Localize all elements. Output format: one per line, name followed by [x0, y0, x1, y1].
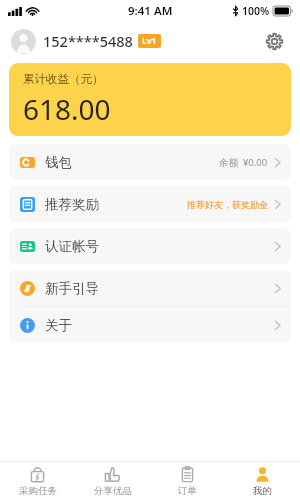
button[interactable]: 分享优品	[75, 462, 150, 500]
button[interactable]: 认证帐号	[9, 228, 291, 264]
staticText: 分享优品	[94, 485, 132, 497]
button[interactable]: 新手引导	[9, 270, 291, 306]
staticText: 余额 ¥0.00	[219, 156, 268, 169]
staticText: Lv1	[142, 35, 157, 47]
button[interactable]: 钱包	[9, 144, 291, 180]
staticText: 100%	[242, 4, 270, 18]
button[interactable]: Settings	[259, 26, 289, 56]
staticText: 采购任务	[19, 485, 57, 497]
staticText: 618.00	[23, 90, 111, 128]
button[interactable]: 我的	[225, 462, 300, 500]
staticText: 认证帐号	[45, 238, 99, 255]
button[interactable]: 关于	[9, 307, 291, 343]
staticText: 152****5488	[43, 31, 133, 51]
staticText: 推荐好友，获奖励金	[187, 199, 268, 210]
button[interactable]: 订单	[150, 462, 225, 500]
staticText: 关于	[45, 317, 72, 334]
staticText: 推荐奖励	[45, 196, 99, 213]
staticText: 新手引导	[45, 280, 99, 297]
staticText: 累计收益（元）	[23, 72, 104, 86]
button[interactable]: 采购任务	[0, 462, 75, 500]
staticText: 我的	[253, 485, 272, 497]
staticText: 9:41 AM	[128, 3, 173, 19]
staticText: 订单	[178, 485, 197, 497]
staticText: 钱包	[45, 154, 72, 171]
button[interactable]: 累计收益（元）	[9, 63, 291, 136]
button[interactable]: 推荐奖励	[9, 186, 291, 222]
